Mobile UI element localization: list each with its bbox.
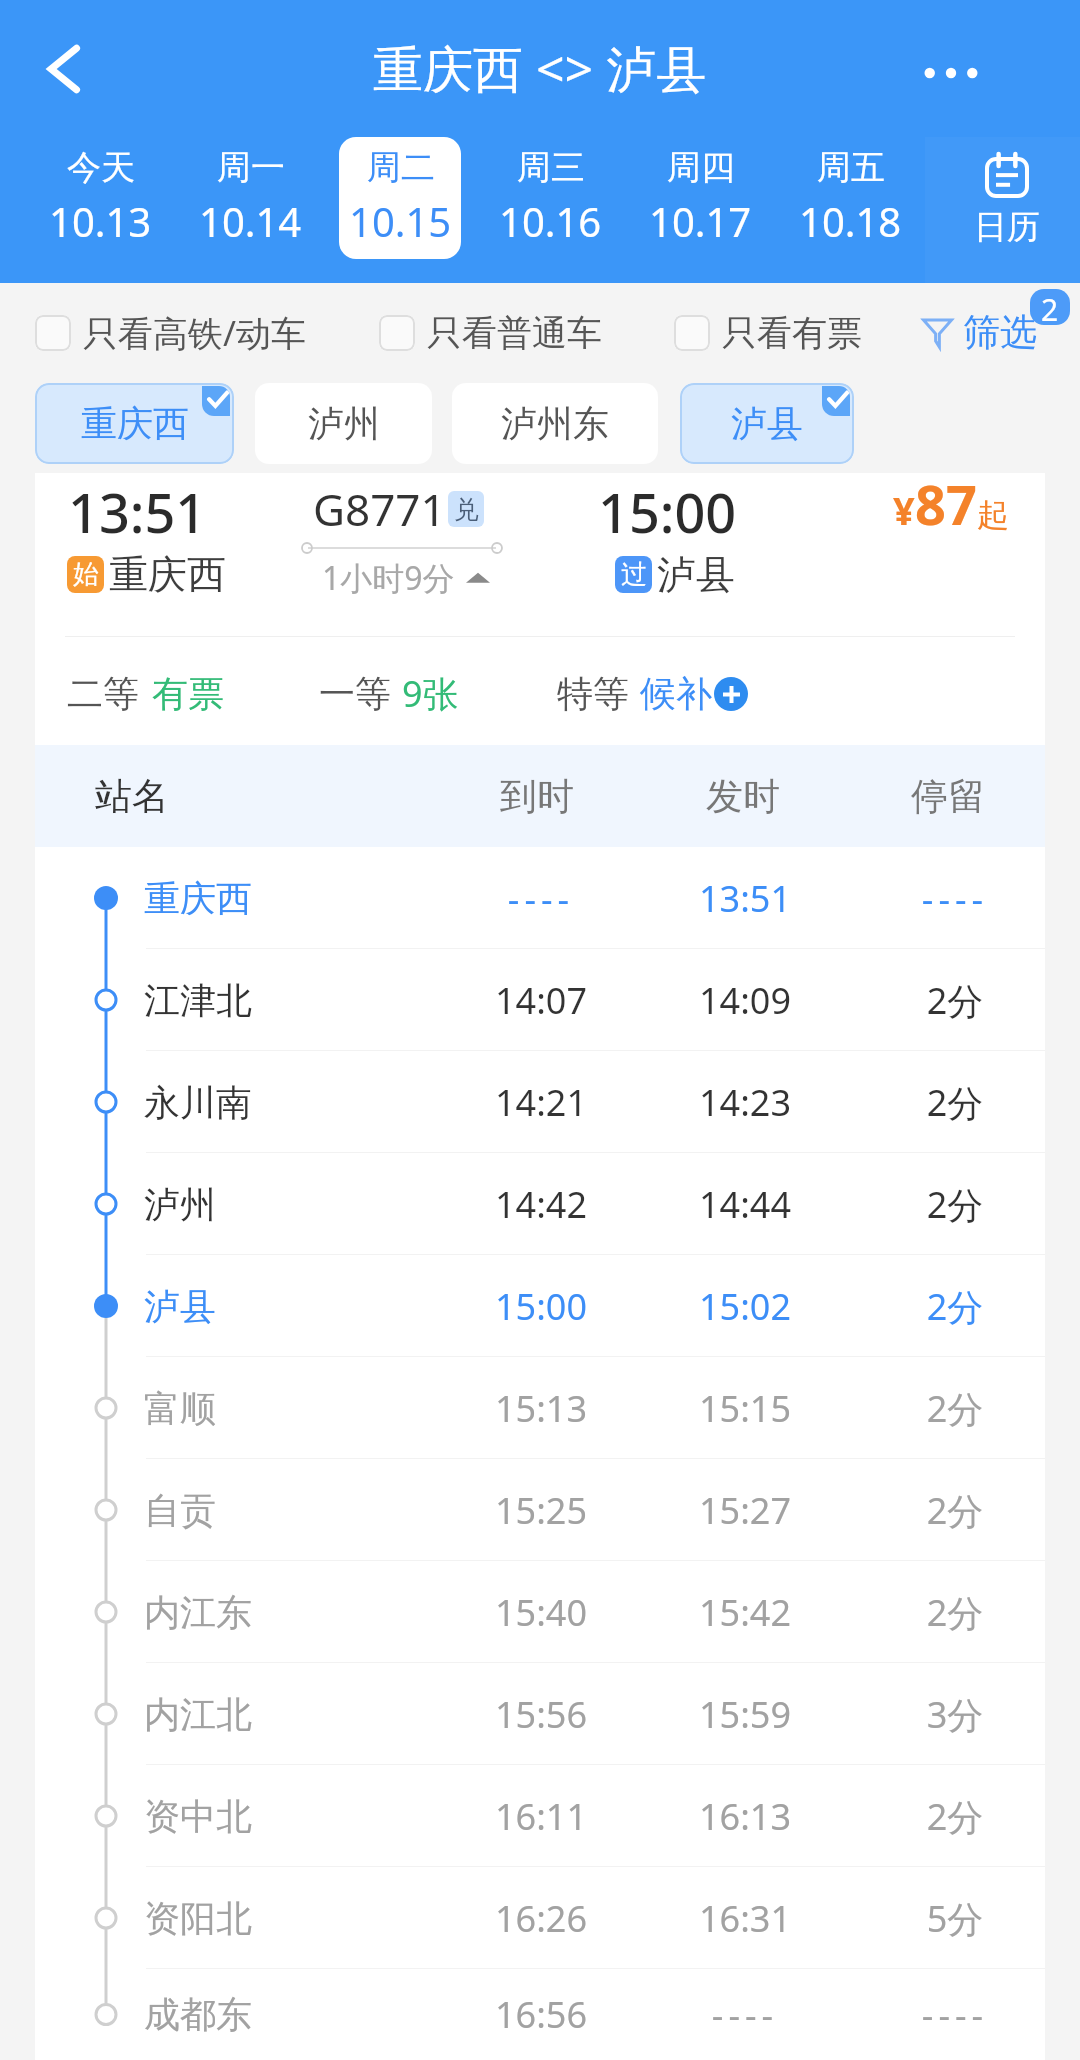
button[interactable]: 重庆西: [35, 847, 1045, 949]
button[interactable]: 周三: [489, 137, 611, 259]
staticText: 富顺: [144, 1386, 216, 1431]
staticText: ¥: [893, 484, 915, 536]
staticText: 15:59: [665, 1690, 825, 1739]
button[interactable]: 周二: [339, 137, 461, 259]
staticText: 泸县: [144, 1284, 216, 1329]
staticText: 发时: [663, 773, 823, 820]
button[interactable]: 泸州: [255, 383, 432, 464]
staticText: 到时: [457, 773, 617, 820]
staticText: 一等: [319, 671, 391, 716]
button[interactable]: 周一: [189, 137, 311, 259]
staticText: 14:23: [665, 1078, 825, 1127]
staticText: 14:09: [665, 976, 825, 1025]
staticText: 今天: [67, 146, 135, 189]
button[interactable]: 13:51: [35, 473, 1045, 745]
staticText: 内江东: [144, 1590, 252, 1635]
button[interactable]: 内江东: [35, 1561, 1045, 1663]
staticText: 兑: [454, 494, 479, 525]
staticText: 2分: [875, 1588, 1035, 1637]
button[interactable]: 永川南: [35, 1051, 1045, 1153]
staticText: 重庆西: [109, 550, 226, 599]
staticText: 江津北: [144, 978, 252, 1023]
button[interactable]: 重庆西: [35, 383, 234, 464]
staticText: ----: [665, 1990, 825, 2039]
staticText: 周二: [367, 146, 435, 189]
staticText: 泸州: [144, 1182, 216, 1227]
button[interactable]: 筛选: [922, 309, 1037, 356]
staticText: 3分: [875, 1690, 1035, 1739]
staticText: 16:13: [665, 1792, 825, 1841]
staticText: 2分: [875, 1384, 1035, 1433]
staticText: 2分: [875, 1078, 1035, 1127]
staticText: 10.15: [349, 194, 452, 248]
staticText: 重庆西: [144, 876, 252, 921]
staticText: 候补: [640, 671, 712, 716]
button[interactable]: Calendar: [925, 137, 1080, 283]
staticText: 特等: [557, 671, 629, 716]
button[interactable]: 只看高铁/动车: [35, 309, 307, 357]
staticText: 15:13: [461, 1384, 621, 1433]
staticText: 10.14: [199, 194, 302, 248]
button[interactable]: 富顺: [35, 1357, 1045, 1459]
staticText: 10.17: [649, 194, 752, 248]
button[interactable]: Back: [22, 29, 102, 109]
staticText: 15:40: [461, 1588, 621, 1637]
button[interactable]: 泸县: [680, 383, 854, 464]
button[interactable]: 内江北: [35, 1663, 1045, 1765]
staticText: 泸州: [308, 401, 380, 446]
button[interactable]: 成都东: [35, 1969, 1045, 2060]
staticText: 筛选: [963, 309, 1037, 356]
button[interactable]: 资中北: [35, 1765, 1045, 1867]
button[interactable]: 自贡: [35, 1459, 1045, 1561]
staticText: 停留: [868, 773, 1028, 820]
staticText: 泸县: [731, 401, 803, 446]
staticText: 资阳北: [144, 1896, 252, 1941]
staticText: 自贡: [144, 1488, 216, 1533]
button[interactable]: 泸县: [35, 1255, 1045, 1357]
button[interactable]: 周四: [639, 137, 761, 259]
staticText: 2分: [875, 1282, 1035, 1331]
staticText: 周一: [217, 146, 285, 189]
staticText: 2分: [875, 1792, 1035, 1841]
staticText: 15:25: [461, 1486, 621, 1535]
staticText: 14:07: [461, 976, 621, 1025]
button[interactable]: 周五: [789, 137, 911, 259]
staticText: 16:56: [461, 1990, 621, 2039]
staticText: 起: [977, 495, 1009, 535]
staticText: 10.13: [49, 194, 152, 248]
staticText: 14:44: [665, 1180, 825, 1229]
staticText: 周四: [667, 146, 735, 189]
staticText: 9张: [402, 669, 459, 718]
staticText: G8771: [313, 479, 446, 539]
staticText: 2分: [875, 1180, 1035, 1229]
staticText: 周三: [517, 146, 585, 189]
staticText: 内江北: [144, 1692, 252, 1737]
staticText: 87: [915, 467, 977, 541]
staticText: 5分: [875, 1894, 1035, 1943]
button[interactable]: 只看有票: [674, 311, 862, 355]
staticText: 泸县: [657, 550, 735, 599]
staticText: 14:42: [461, 1180, 621, 1229]
staticText: 始: [73, 558, 99, 591]
staticText: 15:42: [665, 1588, 825, 1637]
button[interactable]: More options: [911, 29, 991, 109]
staticText: 资中北: [144, 1794, 252, 1839]
staticText: 14:21: [461, 1078, 621, 1127]
button[interactable]: 泸州东: [452, 383, 658, 464]
button[interactable]: 今天: [39, 137, 161, 259]
button[interactable]: 只看普通车: [379, 311, 602, 355]
staticText: 16:26: [461, 1894, 621, 1943]
staticText: 只看有票: [722, 311, 862, 355]
staticText: 15:27: [665, 1486, 825, 1535]
staticText: 永川南: [144, 1080, 252, 1125]
staticText: 二等: [67, 671, 139, 716]
button[interactable]: 江津北: [35, 949, 1045, 1051]
staticText: ----: [461, 874, 621, 923]
staticText: 泸州东: [501, 401, 609, 446]
button[interactable]: 泸州: [35, 1153, 1045, 1255]
staticText: 13:51: [68, 475, 207, 549]
button[interactable]: 资阳北: [35, 1867, 1045, 1969]
staticText: 10.18: [799, 194, 902, 248]
staticText: 只看高铁/动车: [83, 309, 307, 357]
staticText: 过: [621, 558, 647, 591]
